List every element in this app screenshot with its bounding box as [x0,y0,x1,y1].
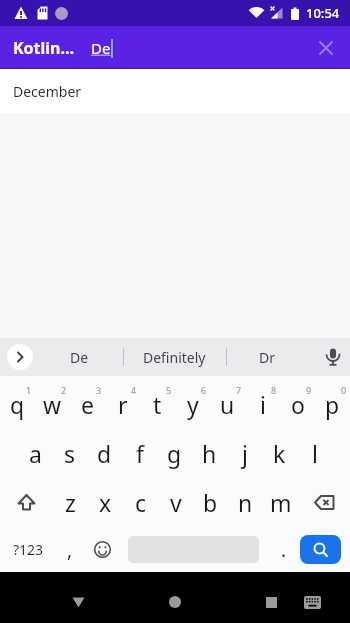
button[interactable] [57,581,99,623]
staticText: z [65,487,76,518]
button[interactable]: , [56,527,84,572]
button[interactable]: u [210,380,245,429]
button[interactable]: f [122,429,157,478]
staticText: December [13,82,82,101]
staticText: n [238,487,253,518]
staticText: De [70,348,89,367]
staticText: p [325,389,340,420]
button[interactable] [298,478,350,527]
staticText: i [260,389,266,420]
staticText: k [273,438,286,469]
staticText: b [203,487,218,518]
staticText: . [281,537,287,563]
button[interactable] [320,344,346,370]
button[interactable] [7,344,33,370]
staticText: Dr [259,348,276,367]
staticText: 2 [61,384,67,396]
staticText: y [187,389,199,420]
staticText: m [270,487,292,518]
staticText: x [99,487,112,518]
staticText: 7 [236,384,242,396]
staticText: Kotlin… [13,37,75,59]
staticText: 1 [26,384,32,396]
button[interactable]: z [52,478,88,527]
button[interactable]: r [105,380,140,429]
button[interactable]: o [280,380,315,429]
staticText: d [97,438,112,469]
button[interactable]: s [52,429,87,478]
staticText: h [202,438,217,469]
staticText: g [167,438,182,469]
staticText: 5 [166,384,172,396]
button[interactable]: Definitely [123,338,226,376]
button[interactable]: d [87,429,122,478]
button[interactable] [84,527,120,572]
button[interactable]: n [228,478,263,527]
staticText: a [29,438,42,469]
button[interactable] [0,478,52,527]
staticText: De [91,38,111,58]
staticText: r [118,389,128,420]
staticText: j [242,438,248,469]
staticText: 10:54 [306,4,340,22]
button[interactable]: y [175,380,210,429]
staticText: 9 [306,384,312,396]
button[interactable] [250,581,292,623]
staticText: s [64,438,76,469]
button[interactable]: w [35,380,70,429]
button[interactable]: c [123,478,158,527]
button[interactable]: December [0,69,350,113]
staticText: 8 [271,384,277,396]
button[interactable]: De [36,338,123,376]
button[interactable]: p [315,380,350,429]
button[interactable]: De [91,26,301,69]
staticText: u [220,389,235,420]
button[interactable]: e [70,380,105,429]
staticText: ?123 [13,540,44,559]
button[interactable]: i [245,380,280,429]
staticText: , [67,537,73,563]
staticText: t [153,389,162,420]
staticText: Definitely [143,348,206,367]
button[interactable]: v [158,478,193,527]
staticText: 0 [341,384,347,396]
button[interactable] [295,585,329,619]
staticText: w [43,389,62,420]
staticText: 6 [201,384,207,396]
button[interactable]: j [227,429,262,478]
button[interactable] [300,535,341,564]
staticText: o [291,389,305,420]
button[interactable] [154,581,196,623]
button[interactable]: g [157,429,192,478]
staticText: v [170,487,182,518]
staticText: q [10,389,25,420]
button[interactable]: t [140,380,175,429]
button[interactable]: a [18,429,52,478]
button[interactable]: k [262,429,297,478]
button[interactable]: l [297,429,332,478]
staticText: 3 [96,384,102,396]
staticText: c [135,487,147,518]
button[interactable]: q [0,380,35,429]
staticText: l [312,438,318,469]
button[interactable] [305,27,347,69]
staticText: 4 [131,384,137,396]
button[interactable]: b [193,478,228,527]
button[interactable]: . [267,527,300,572]
staticText: f [136,438,144,469]
button[interactable]: ?123 [0,527,56,572]
button[interactable]: m [263,478,298,527]
staticText: e [81,389,94,420]
button[interactable]: h [192,429,227,478]
button[interactable]: Dr [226,338,308,376]
button[interactable]: x [88,478,123,527]
